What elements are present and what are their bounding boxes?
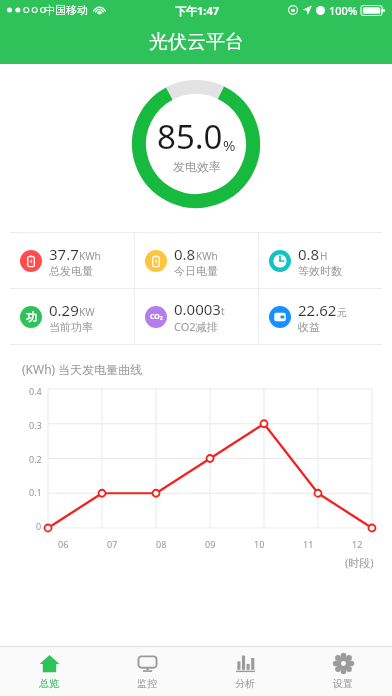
staticText: 85.0 <box>157 114 223 159</box>
button[interactable]: 分析 <box>196 647 294 696</box>
staticText: 100% <box>329 3 358 18</box>
staticText: 0.0003 <box>174 299 221 319</box>
staticText: 功 <box>26 310 37 324</box>
staticText: 08 <box>156 538 167 550</box>
staticText: 0 <box>36 520 42 532</box>
staticText: 总览 <box>39 677 59 690</box>
staticText: CO2减排 <box>174 319 218 334</box>
staticText: 设置 <box>333 677 353 690</box>
button[interactable]: CO₂ <box>135 289 258 344</box>
staticText: 06 <box>58 538 69 550</box>
staticText: 0.8 <box>298 244 320 264</box>
staticText: 0.3 <box>29 419 42 431</box>
staticText: (时段) <box>345 555 374 570</box>
staticText: 下午1:47 <box>175 3 219 18</box>
staticText: KWh <box>79 249 101 263</box>
staticText: 元 <box>337 306 347 319</box>
staticText: 10 <box>254 538 265 550</box>
staticText: 11 <box>303 538 314 550</box>
staticText: 0.1 <box>29 486 42 498</box>
staticText: KWh <box>196 249 218 263</box>
staticText: 当前功率 <box>49 320 93 334</box>
staticText: 中国移动 <box>44 3 88 17</box>
staticText: KW <box>79 305 95 319</box>
staticText: 总发电量 <box>49 264 93 278</box>
button[interactable]: 0.8 <box>135 233 258 288</box>
staticText: 监控 <box>137 677 157 690</box>
staticText: 0.2 <box>29 453 42 465</box>
staticText: 分析 <box>235 677 255 690</box>
staticText: (KWh) 当天发电量曲线 <box>22 361 143 377</box>
staticText: 22.62 <box>298 300 337 320</box>
staticText: H <box>320 249 328 263</box>
staticText: 09 <box>205 538 216 550</box>
button[interactable]: 0.8 <box>259 233 382 288</box>
button[interactable]: 总览 <box>0 647 98 696</box>
staticText: 收益 <box>298 320 320 334</box>
staticText: 0.29 <box>49 300 79 320</box>
staticText: 0.4 <box>29 385 42 397</box>
staticText: 37.7 <box>49 244 79 264</box>
staticText: 12 <box>352 538 363 550</box>
button[interactable]: 监控 <box>98 647 196 696</box>
staticText: 光伏云平台 <box>149 30 244 54</box>
button[interactable]: 37.7 <box>10 233 134 288</box>
staticText: 等效时数 <box>298 264 342 278</box>
staticText: 发电效率 <box>173 159 221 174</box>
staticText: CO₂ <box>150 312 163 322</box>
button[interactable]: 功 <box>10 289 134 344</box>
staticText: t <box>221 304 225 318</box>
button[interactable]: 设置 <box>294 647 392 696</box>
staticText: 今日电量 <box>174 264 218 278</box>
staticText: 0.8 <box>174 244 196 264</box>
staticText: % <box>223 135 236 155</box>
button[interactable]: 22.62 <box>259 289 382 344</box>
staticText: 07 <box>107 538 118 550</box>
